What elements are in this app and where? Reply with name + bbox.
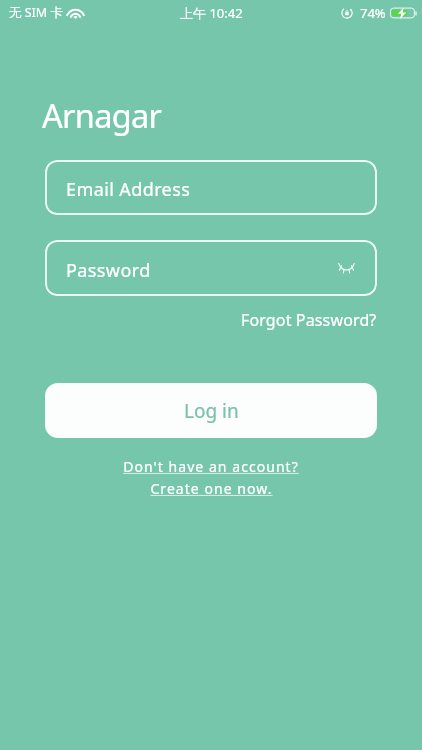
staticText: Don't have an account? <box>123 457 299 476</box>
staticText: 74% <box>360 4 386 22</box>
button[interactable]: Forgot Password? <box>241 309 377 331</box>
staticText: Log in <box>184 398 239 424</box>
staticText: Arnagar <box>42 93 162 137</box>
button[interactable]: Show password <box>330 252 362 284</box>
staticText: 无 SIM 卡 <box>9 4 63 21</box>
button[interactable]: Don't have an account? <box>123 457 299 476</box>
staticText: 上午 10:42 <box>180 4 243 22</box>
staticText: Password <box>66 258 151 283</box>
staticText: Create one now. <box>150 479 273 498</box>
button[interactable]: Email Address <box>45 160 377 215</box>
staticText: Forgot Password? <box>241 309 377 331</box>
button[interactable]: Password <box>45 240 377 296</box>
button[interactable]: Log in <box>45 383 377 438</box>
button[interactable]: Create one now. <box>150 479 273 498</box>
staticText: Email Address <box>66 177 191 202</box>
